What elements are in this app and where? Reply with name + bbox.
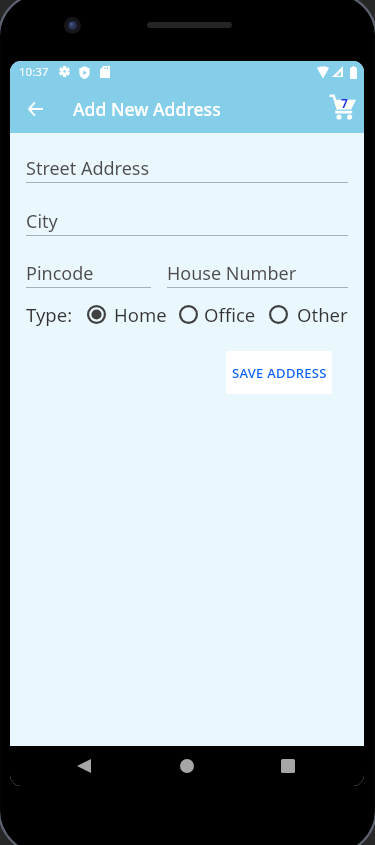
staticText: Office [204, 302, 256, 327]
button[interactable]: Street Address [26, 156, 348, 183]
staticText: City [26, 209, 58, 234]
button[interactable]: City [26, 209, 348, 236]
staticText: Pincode [26, 261, 94, 286]
button[interactable]: Office [179, 301, 256, 327]
button[interactable]: Back [64, 746, 104, 786]
button[interactable]: Home [167, 746, 207, 786]
button[interactable]: Other [269, 301, 348, 327]
staticText: SAVE ADDRESS [232, 364, 327, 382]
button[interactable]: Home [87, 301, 167, 327]
button[interactable]: SAVE ADDRESS [226, 351, 332, 394]
button[interactable]: Pincode [26, 261, 151, 288]
staticText: House Number [167, 261, 297, 286]
button[interactable]: Recent apps [268, 746, 308, 786]
button[interactable]: House Number [167, 261, 348, 288]
staticText: 10:37 [19, 64, 49, 80]
staticText: Street Address [26, 156, 150, 181]
button[interactable]: Shopping cart [324, 88, 361, 125]
staticText: Type: [26, 302, 73, 327]
staticText: Other [297, 302, 348, 327]
staticText: 7 [341, 95, 348, 111]
button[interactable]: Back [18, 92, 52, 126]
staticText: Add New Address [73, 97, 221, 121]
staticText: Home [114, 302, 167, 327]
